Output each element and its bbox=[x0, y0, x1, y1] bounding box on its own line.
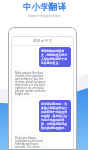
button[interactable]: 这句话的意思是：大多数人都喜欢把自己的衣服洗干净并且变得柔顺，但有些人认为这才是… bbox=[39, 100, 71, 132]
button[interactable]: Most people like their clothes to be was… bbox=[14, 69, 48, 98]
button[interactable]: 请帮我翻译这段英文，我想知道大部分人喜欢把衣服洗干净这件事的含义。 bbox=[39, 47, 71, 67]
staticText: Most people like their clothes to be was… bbox=[15, 71, 47, 96]
staticText: 英语 ⇄ 中文 bbox=[33, 38, 53, 43]
staticText: 帮助中小学生轻松学英语 bbox=[28, 14, 61, 18]
staticText: 这句话的意思是：大多数人都喜欢把自己的衣服洗干净并且变得柔顺，但有些人认为这才是… bbox=[41, 102, 69, 130]
button[interactable]: 英语 ⇄ 中文 bbox=[11, 36, 74, 45]
button[interactable]: Dogs are always regarded as the most fri… bbox=[14, 134, 48, 150]
staticText: 请帮我翻译这段英文，我想知道大部分人喜欢把衣服洗干净这件事的含义。 bbox=[41, 49, 69, 65]
staticText: Dogs are always regarded as the most fri… bbox=[15, 136, 47, 148]
staticText: 中小学翻译 bbox=[23, 2, 66, 13]
